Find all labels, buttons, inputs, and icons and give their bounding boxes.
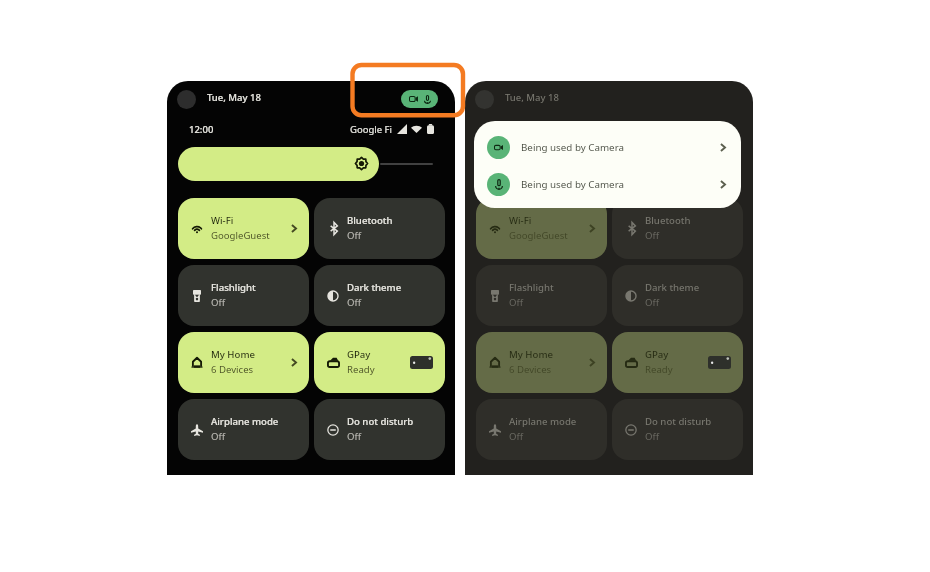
button[interactable]: Profile (177, 90, 196, 109)
button[interactable]: Wi-Fi (178, 198, 309, 259)
button[interactable]: Do not disturb (612, 399, 743, 460)
staticText: Off (645, 229, 660, 242)
staticText: Off (509, 430, 524, 443)
button[interactable]: Do not disturb (314, 399, 445, 460)
button[interactable]: Airplane mode (476, 399, 607, 460)
button[interactable]: Being used by Camera (474, 129, 741, 165)
staticText: Flashlight (509, 281, 554, 294)
button[interactable]: Brightness (476, 147, 677, 181)
button[interactable]: GPay (314, 332, 445, 393)
staticText: GPay (645, 348, 669, 361)
staticText: Off (645, 296, 660, 309)
button[interactable]: Dark theme (612, 265, 743, 326)
button[interactable]: Dark theme (314, 265, 445, 326)
staticText: Off (211, 296, 226, 309)
staticText: Tue, May 18 (207, 91, 261, 104)
staticText: Off (211, 430, 226, 443)
staticText: 12:00 (189, 123, 214, 136)
button[interactable]: Brightness (178, 147, 379, 181)
staticText: Do not disturb (645, 415, 712, 428)
staticText: Being used by Camera (521, 141, 624, 154)
button[interactable]: Wi-Fi (476, 198, 607, 259)
staticText: Off (347, 430, 362, 443)
button[interactable]: My Home (476, 332, 607, 393)
staticText: Google Fi (350, 123, 392, 136)
staticText: Off (509, 296, 524, 309)
staticText: Tue, May 18 (505, 91, 559, 104)
staticText: Wi-Fi (211, 214, 234, 227)
staticText: GoogleGuest (211, 229, 270, 242)
staticText: Being used by Camera (521, 178, 624, 191)
button[interactable]: Being used by Camera (474, 166, 741, 202)
button[interactable]: Bluetooth (314, 198, 445, 259)
button[interactable]: Airplane mode (178, 399, 309, 460)
staticText: Off (347, 296, 362, 309)
staticText: Off (645, 430, 660, 443)
staticText: Ready (645, 363, 673, 376)
staticText: 6 Devices (211, 363, 254, 376)
staticText: Airplane mode (509, 415, 577, 428)
staticText: GoogleGuest (509, 229, 568, 242)
button[interactable]: Flashlight (178, 265, 309, 326)
staticText: Airplane mode (211, 415, 279, 428)
staticText: My Home (509, 348, 553, 361)
staticText: Dark theme (645, 281, 700, 294)
button[interactable]: Flashlight (476, 265, 607, 326)
staticText: Off (347, 229, 362, 242)
button[interactable]: Bluetooth (612, 198, 743, 259)
button[interactable]: GPay (612, 332, 743, 393)
staticText: Ready (347, 363, 375, 376)
staticText: 6 Devices (509, 363, 552, 376)
staticText: Flashlight (211, 281, 256, 294)
staticText: My Home (211, 348, 255, 361)
staticText: GPay (347, 348, 371, 361)
button[interactable]: My Home (178, 332, 309, 393)
button[interactable]: Profile (475, 90, 494, 109)
staticText: Do not disturb (347, 415, 414, 428)
staticText: Bluetooth (645, 214, 691, 227)
staticText: Wi-Fi (509, 214, 532, 227)
button[interactable]: Camera and microphone in use (401, 90, 438, 108)
staticText: Bluetooth (347, 214, 393, 227)
staticText: Dark theme (347, 281, 402, 294)
